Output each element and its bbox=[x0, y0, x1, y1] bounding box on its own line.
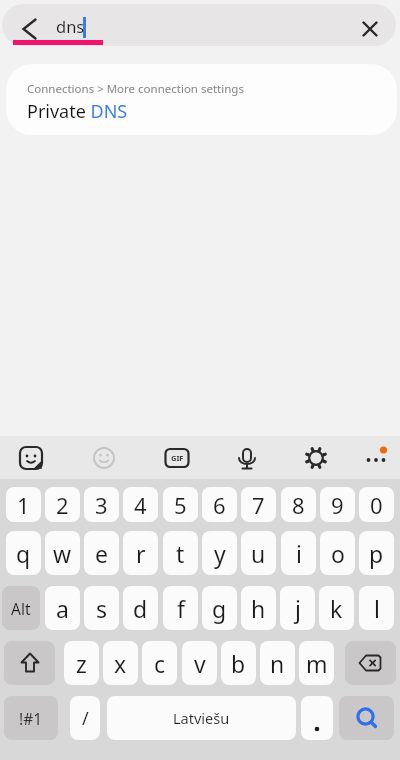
staticText: t bbox=[176, 538, 185, 569]
button[interactable] bbox=[339, 696, 394, 740]
staticText: h bbox=[251, 593, 266, 624]
button[interactable]: h bbox=[241, 586, 276, 630]
staticText: b bbox=[231, 648, 246, 679]
staticText: y bbox=[214, 538, 226, 569]
button[interactable] bbox=[301, 696, 333, 740]
button[interactable]: i bbox=[281, 531, 316, 575]
staticText: g bbox=[212, 593, 227, 624]
staticText: 1 bbox=[17, 490, 30, 520]
button[interactable]: d bbox=[123, 586, 158, 630]
button[interactable] bbox=[345, 641, 396, 685]
button[interactable]: 3 bbox=[84, 487, 119, 522]
button[interactable]: o bbox=[320, 531, 355, 575]
staticText: 3 bbox=[95, 490, 108, 520]
button[interactable]: r bbox=[123, 531, 158, 575]
staticText: f bbox=[177, 593, 185, 624]
button[interactable]: w bbox=[45, 531, 80, 575]
staticText: i bbox=[296, 538, 302, 569]
staticText: 6 bbox=[213, 490, 226, 520]
staticText: j bbox=[295, 593, 301, 624]
staticText: r bbox=[136, 538, 146, 569]
button[interactable]: 9 bbox=[320, 487, 355, 522]
button[interactable]: x bbox=[103, 641, 138, 685]
button[interactable]: f bbox=[163, 586, 198, 630]
staticText: d bbox=[133, 593, 148, 624]
button[interactable]: e bbox=[84, 531, 119, 575]
staticText: GIF bbox=[171, 453, 184, 463]
button[interactable]: 1 bbox=[6, 487, 41, 522]
staticText: 7 bbox=[252, 490, 265, 520]
button[interactable]: n bbox=[260, 641, 295, 685]
button[interactable]: k bbox=[319, 586, 354, 630]
staticText: x bbox=[114, 648, 127, 679]
staticText: q bbox=[16, 538, 31, 569]
staticText: Private DNS bbox=[27, 99, 128, 124]
button[interactable] bbox=[227, 438, 267, 478]
button[interactable] bbox=[84, 438, 124, 478]
staticText: 8 bbox=[292, 490, 305, 520]
staticText: 9 bbox=[331, 490, 344, 520]
staticText: u bbox=[251, 538, 266, 569]
button[interactable]: a bbox=[45, 586, 80, 630]
button[interactable]: Alt bbox=[2, 586, 40, 630]
staticText: o bbox=[331, 538, 345, 569]
button[interactable]: l bbox=[359, 586, 394, 630]
staticText: e bbox=[95, 538, 108, 569]
button[interactable] bbox=[4, 641, 55, 685]
button[interactable]: !#1 bbox=[4, 696, 58, 740]
button[interactable]: 8 bbox=[281, 487, 316, 522]
staticText: Latviešu bbox=[173, 708, 230, 728]
button[interactable]: t bbox=[163, 531, 198, 575]
button[interactable]: b bbox=[221, 641, 256, 685]
staticText: l bbox=[374, 593, 380, 624]
staticText: w bbox=[53, 538, 72, 569]
staticText: 4 bbox=[134, 490, 147, 520]
button[interactable]: / bbox=[70, 696, 100, 740]
button[interactable]: v bbox=[182, 641, 217, 685]
button[interactable] bbox=[296, 438, 336, 478]
button[interactable]: y bbox=[202, 531, 237, 575]
button[interactable]: GIF bbox=[157, 438, 197, 478]
staticText: 0 bbox=[370, 490, 383, 520]
staticText: k bbox=[330, 593, 343, 624]
staticText: dns bbox=[56, 15, 85, 37]
button[interactable]: 2 bbox=[45, 487, 80, 522]
button[interactable]: j bbox=[280, 586, 315, 630]
button[interactable]: p bbox=[359, 531, 394, 575]
button[interactable]: m bbox=[299, 641, 334, 685]
staticText: Connections > More connection settings bbox=[27, 81, 244, 97]
staticText: 2 bbox=[56, 490, 69, 520]
staticText: 5 bbox=[174, 490, 187, 520]
button[interactable]: u bbox=[241, 531, 276, 575]
staticText: p bbox=[369, 538, 384, 569]
staticText: n bbox=[270, 648, 285, 679]
button[interactable]: 6 bbox=[202, 487, 237, 522]
button[interactable]: 5 bbox=[163, 487, 198, 522]
staticText: Alt bbox=[11, 598, 31, 619]
staticText: !#1 bbox=[19, 708, 43, 729]
staticText: a bbox=[56, 593, 69, 624]
button[interactable] bbox=[356, 438, 396, 478]
button[interactable]: 4 bbox=[123, 487, 158, 522]
staticText: c bbox=[154, 648, 166, 679]
button[interactable]: 7 bbox=[241, 487, 276, 522]
button[interactable]: z bbox=[64, 641, 99, 685]
staticText: v bbox=[194, 648, 206, 679]
button[interactable]: Connections > More connection settings bbox=[6, 64, 397, 135]
staticText: z bbox=[76, 648, 87, 679]
staticText: m bbox=[306, 648, 328, 679]
button[interactable] bbox=[11, 438, 51, 478]
button[interactable] bbox=[354, 13, 386, 45]
staticText: / bbox=[82, 706, 89, 731]
staticText: s bbox=[96, 593, 108, 624]
button[interactable]: g bbox=[202, 586, 237, 630]
button[interactable]: 0 bbox=[359, 487, 394, 522]
button[interactable]: q bbox=[6, 531, 41, 575]
button[interactable]: s bbox=[84, 586, 119, 630]
button[interactable]: c bbox=[142, 641, 177, 685]
button[interactable]: Latviešu bbox=[107, 696, 296, 740]
button[interactable] bbox=[14, 13, 46, 45]
